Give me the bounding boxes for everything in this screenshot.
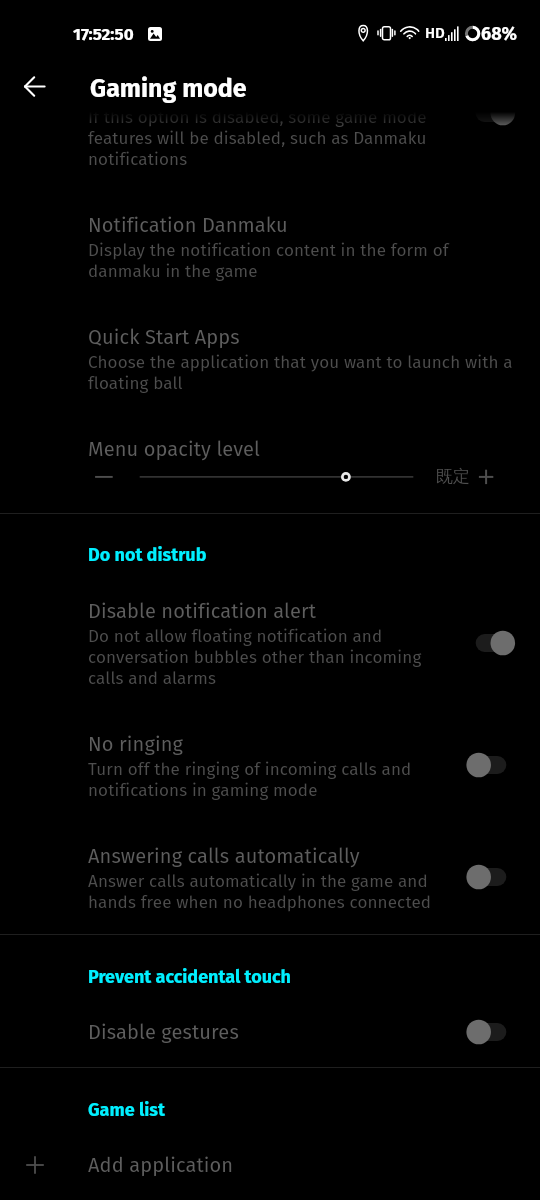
staticText: Notification Danmaku bbox=[88, 213, 288, 237]
staticText: Disable notification alert bbox=[88, 599, 317, 623]
staticText: Do not distrub bbox=[88, 544, 207, 566]
button[interactable]: Add application bbox=[0, 1153, 540, 1177]
staticText: Prevent accidental touch bbox=[88, 966, 291, 988]
staticText: 17:52:50 bbox=[73, 24, 134, 44]
staticText: Choose the application that you want to … bbox=[88, 352, 513, 394]
staticText: Answer calls automatically in the game a… bbox=[88, 871, 432, 913]
staticText: Disable gestures bbox=[88, 1020, 239, 1044]
button[interactable]: Switch on bbox=[466, 629, 516, 657]
button[interactable]: Answering calls automatically bbox=[0, 844, 540, 910]
staticText: No ringing bbox=[88, 732, 184, 756]
staticText: 68% bbox=[481, 23, 518, 45]
button[interactable]: Switch on bbox=[466, 99, 516, 127]
button[interactable]: Menu opacity level bbox=[0, 437, 540, 461]
staticText: If this option is disabled, some game mo… bbox=[88, 86, 427, 170]
staticText: Menu opacity level bbox=[88, 437, 261, 461]
staticText: HD bbox=[425, 24, 445, 42]
staticText: Do not allow floating notification and c… bbox=[88, 626, 422, 689]
button[interactable]: Menu opacity slider bbox=[0, 461, 540, 493]
staticText: Game list bbox=[88, 1099, 165, 1121]
button[interactable]: Back bbox=[14, 66, 56, 108]
button[interactable]: No ringing bbox=[0, 732, 540, 798]
button[interactable]: Notification Danmaku bbox=[0, 213, 540, 279]
staticText: Display the notification content in the … bbox=[88, 240, 449, 282]
button[interactable]: Disable gestures bbox=[0, 1020, 540, 1044]
staticText: Gaming mode bbox=[90, 74, 247, 104]
button[interactable]: Quick Start Apps bbox=[0, 325, 540, 391]
button[interactable]: Disable notification alert bbox=[0, 599, 540, 686]
button[interactable]: Switch off bbox=[466, 751, 516, 779]
button[interactable]: Switch off bbox=[466, 1020, 516, 1044]
staticText: Quick Start Apps bbox=[88, 325, 240, 349]
staticText: Turn off the ringing of incoming calls a… bbox=[88, 759, 412, 801]
staticText: Answering calls automatically bbox=[88, 844, 360, 868]
staticText: Add application bbox=[88, 1153, 234, 1177]
button[interactable]: Switch off bbox=[466, 863, 516, 891]
staticText: 既定 bbox=[436, 466, 470, 487]
